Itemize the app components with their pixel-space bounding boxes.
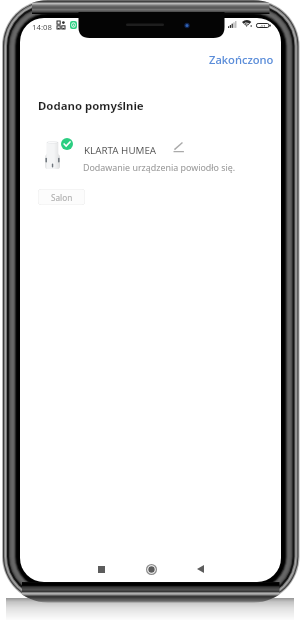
button[interactable]: Ostatnie aplikacje: [90, 558, 112, 580]
button[interactable]: Zakończono: [199, 44, 281, 75]
staticText: Dodano pomyślnie: [38, 98, 144, 114]
staticText: Zakończono: [209, 52, 274, 67]
button[interactable]: Wstecz: [189, 558, 211, 580]
button[interactable]: Ekran główny: [140, 558, 162, 580]
staticText: Salon: [51, 192, 73, 203]
staticText: 14:08: [32, 22, 52, 33]
button[interactable]: Edytuj nazwę: [173, 140, 186, 153]
staticText: Dodawanie urządzenia powiodło się.: [83, 161, 236, 173]
staticText: KLARTA HUMEA: [84, 144, 157, 157]
staticText: 41: [260, 23, 266, 28]
button[interactable]: Salon: [38, 189, 85, 205]
